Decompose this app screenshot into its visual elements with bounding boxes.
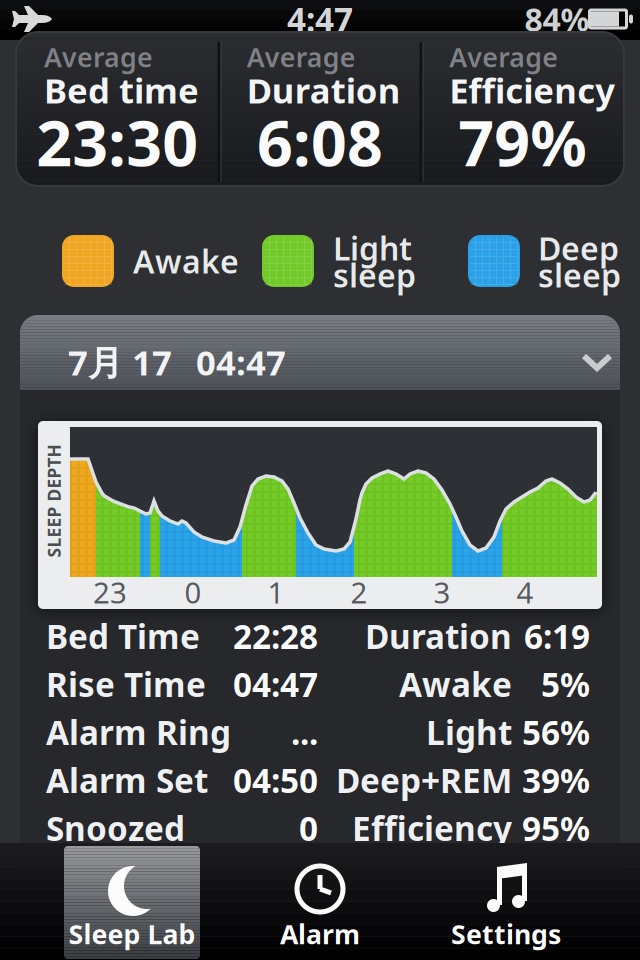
staticText: Light: [333, 227, 412, 269]
staticText: Awake: [399, 662, 512, 706]
staticText: sleep: [538, 254, 621, 296]
staticText: 04:50: [233, 758, 318, 802]
staticText: 3: [433, 572, 450, 611]
staticText: Snoozed: [46, 806, 185, 850]
staticText: 04:47: [196, 339, 286, 385]
staticText: Efficiency: [449, 67, 615, 113]
staticText: ...: [291, 710, 318, 754]
staticText: 6:08: [257, 100, 383, 184]
staticText: 6:19: [524, 614, 590, 658]
staticText: 0: [299, 806, 318, 850]
staticText: 0: [184, 572, 201, 611]
staticText: Rise Time: [46, 662, 206, 706]
staticText: 56%: [522, 710, 590, 754]
staticText: Deep: [538, 227, 619, 269]
button[interactable]: Sleep Lab: [64, 846, 200, 959]
staticText: 23: [93, 572, 127, 611]
staticText: Average: [44, 39, 153, 75]
staticText: 7月 17: [68, 339, 172, 385]
staticText: 95%: [522, 806, 590, 850]
staticText: Duration: [247, 67, 401, 113]
staticText: 5%: [541, 662, 590, 706]
staticText: 1: [267, 572, 284, 611]
button[interactable]: 7月 17: [20, 315, 620, 408]
staticText: Bed time: [44, 67, 199, 113]
staticText: 2: [350, 572, 367, 611]
staticText: Alarm Set: [46, 758, 208, 802]
staticText: 4:47: [287, 0, 353, 41]
button[interactable]: Settings: [438, 846, 574, 959]
staticText: sleep: [333, 254, 416, 296]
staticText: Average: [247, 39, 356, 75]
staticText: Settings: [451, 916, 561, 952]
staticText: Duration: [365, 614, 512, 658]
staticText: 79%: [458, 100, 587, 184]
staticText: Deep+REM: [336, 758, 512, 802]
staticText: Average: [449, 39, 558, 75]
staticText: 4: [516, 572, 533, 611]
staticText: 04:47: [233, 662, 318, 706]
staticText: Awake: [133, 240, 239, 282]
staticText: Efficiency: [352, 806, 512, 850]
staticText: Sleep Lab: [68, 916, 195, 952]
staticText: 84%: [524, 0, 589, 40]
staticText: Alarm Ring: [46, 710, 231, 754]
staticText: 22:28: [233, 614, 318, 658]
staticText: 23:30: [36, 100, 198, 184]
button[interactable]: Alarm: [252, 846, 388, 959]
staticText: SLEEP DEPTH: [0, 489, 110, 512]
staticText: Alarm: [280, 916, 360, 952]
staticText: 39%: [522, 758, 590, 802]
staticText: Bed Time: [46, 614, 200, 658]
staticText: Light: [426, 710, 512, 754]
